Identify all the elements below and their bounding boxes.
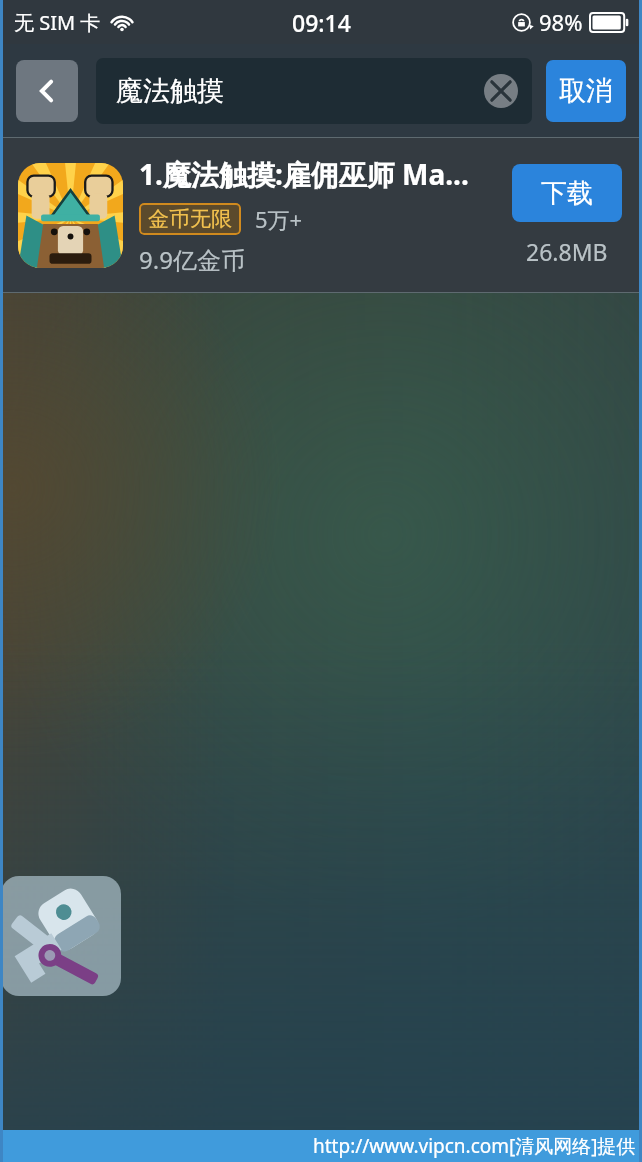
- staticText: 1.魔法触摸:雇佣巫师 Ma...: [139, 155, 469, 193]
- button[interactable]: 取消: [546, 60, 626, 122]
- button[interactable]: Key tool: [1, 876, 121, 996]
- staticText: 取消: [559, 74, 613, 108]
- button[interactable]: Clear: [484, 74, 518, 108]
- button[interactable]: Back: [16, 60, 78, 122]
- staticText: 金币无限: [148, 206, 232, 232]
- staticText: 09:14: [292, 7, 351, 38]
- staticText: 魔法触摸: [116, 74, 224, 108]
- staticText: 9.9亿金币: [139, 243, 245, 276]
- staticText: 下载: [541, 177, 593, 210]
- staticText: 26.8MB: [526, 236, 608, 267]
- staticText: 5万+: [255, 204, 303, 234]
- staticText: http://www.vipcn.com[清风网络]提供: [313, 1133, 636, 1159]
- staticText: 98%: [539, 7, 583, 37]
- button[interactable]: 魔法触摸: [96, 58, 532, 124]
- button[interactable]: 下载: [512, 164, 622, 222]
- button[interactable]: 1.魔法触摸:雇佣巫师 Ma...: [0, 138, 642, 293]
- staticText: 无 SIM 卡: [14, 9, 101, 36]
